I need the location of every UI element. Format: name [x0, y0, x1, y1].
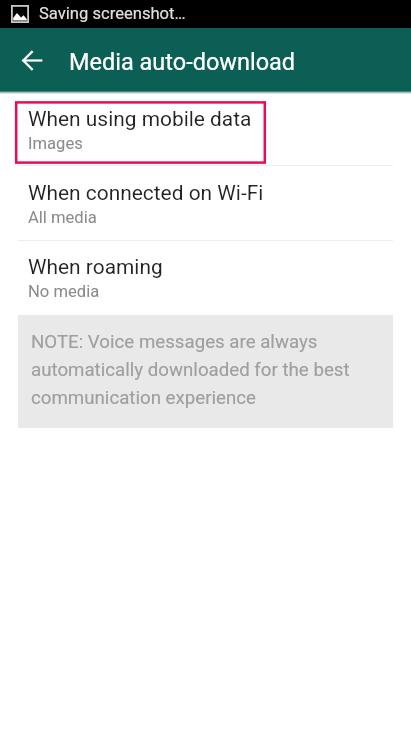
- staticText: All media: [28, 208, 97, 227]
- button[interactable]: When using mobile data: [0, 96, 411, 165]
- button[interactable]: Back: [10, 38, 54, 82]
- staticText: Media auto-download: [69, 48, 296, 76]
- staticText: When using mobile data: [28, 107, 252, 131]
- button[interactable]: When connected on Wi-Fi: [0, 170, 411, 240]
- staticText: Images: [28, 134, 83, 153]
- staticText: When roaming: [28, 255, 163, 279]
- button[interactable]: When roaming: [0, 244, 411, 314]
- staticText: No media: [28, 282, 100, 301]
- staticText: Saving screenshot…: [39, 4, 186, 23]
- staticText: NOTE: Voice messages are always automati…: [31, 331, 371, 409]
- staticText: When connected on Wi-Fi: [28, 181, 264, 205]
